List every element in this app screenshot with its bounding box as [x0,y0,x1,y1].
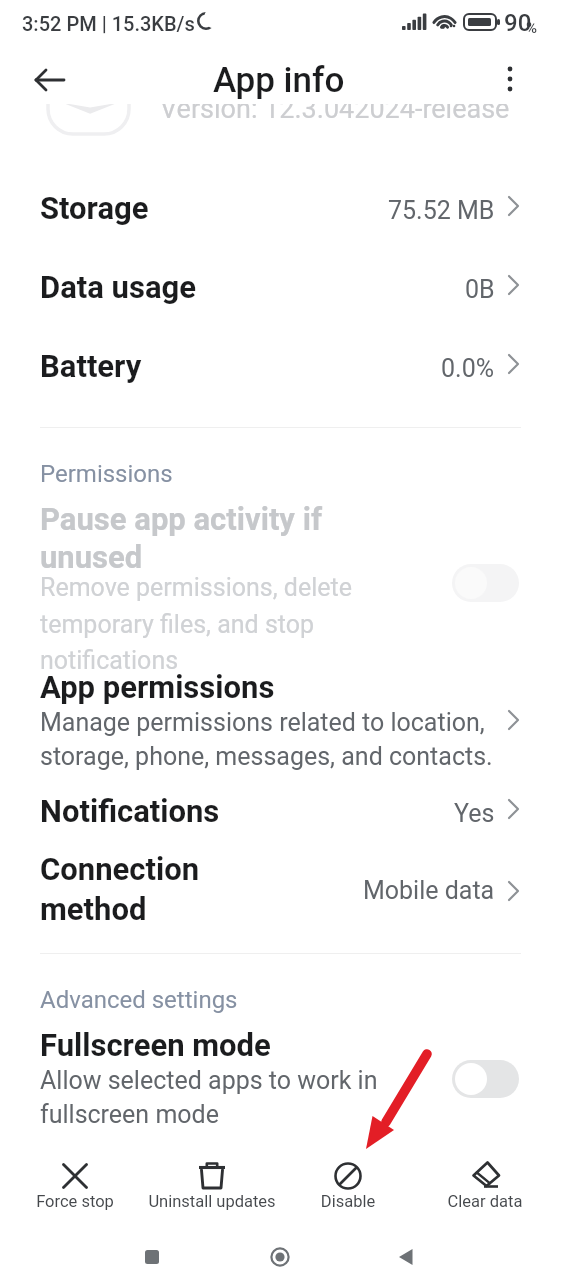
staticText: Allow selected apps to work in fullscree… [40,1066,378,1129]
staticText: Force stop [0,1192,195,1211]
staticText: 3:52 PM | 15.3KB/s [22,12,195,35]
button[interactable] [279,1150,417,1212]
button[interactable] [6,1150,144,1212]
staticText: Yes [454,799,495,828]
staticText: 0B [465,275,495,304]
staticText: 75.52 MB [388,196,495,225]
staticText: Pause app activity if unused [40,501,322,576]
staticText: Fullscreen mode [40,1027,271,1063]
staticText: 90 [504,9,532,37]
button[interactable]: Recents [132,1237,172,1277]
staticText: App info [213,60,345,101]
button[interactable]: Notifications [0,772,561,840]
staticText: Data usage [40,269,196,305]
staticText: Battery [40,348,142,384]
staticText: Storage [40,190,149,226]
staticText: Clear data [365,1192,561,1211]
staticText: Permissions [40,460,173,488]
staticText: 0.0% [441,354,495,383]
button[interactable]: More options [489,58,531,100]
button[interactable] [416,1150,554,1212]
button[interactable]: Battery [0,327,561,395]
button[interactable]: Data usage [0,248,561,316]
button[interactable]: Toggle [452,1060,519,1098]
staticText: % [526,19,538,37]
button[interactable]: Storage [0,169,561,237]
button[interactable]: Connection method [0,845,561,935]
button[interactable]: Back [28,58,72,102]
button[interactable]: App permissions [0,665,561,785]
button[interactable]: Back [386,1237,426,1277]
staticText: Connection method [40,851,200,927]
staticText: Disable [228,1192,468,1211]
button[interactable]: Pause app activity if unused [0,495,561,665]
button[interactable]: Toggle [452,564,519,602]
staticText: Advanced settings [40,986,238,1014]
button[interactable]: Fullscreen mode [0,1022,561,1142]
staticText: Version: 12.3.042024-release [160,104,510,125]
staticText: Remove permissions, delete temporary fil… [40,573,352,675]
staticText: Manage permissions related to location, … [40,708,493,771]
staticText: App permissions [40,669,275,705]
button[interactable]: Home [260,1237,300,1277]
staticText: Mobile data [363,876,495,905]
staticText: Uninstall updates [92,1192,332,1211]
staticText: Notifications [40,793,220,829]
button[interactable] [143,1150,281,1212]
